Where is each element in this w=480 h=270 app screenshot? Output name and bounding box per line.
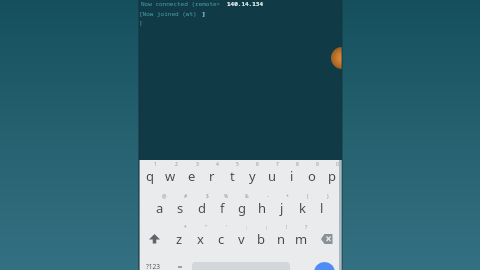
button[interactable]: r [202,160,222,192]
staticText: m [295,230,308,248]
staticText: [Now joined (wt) [139,10,197,18]
staticText: f [220,199,225,217]
staticText: ? [305,224,308,231]
staticText: 1 [154,161,157,168]
button[interactable]: u [262,160,282,192]
button[interactable]: l [312,192,332,224]
staticText: q [146,167,154,185]
staticText: 7 [276,161,279,168]
staticText: $ [206,193,209,200]
staticText: ( [307,193,309,200]
button[interactable]: d [191,192,212,224]
staticText: y [249,167,256,185]
staticText: i [290,167,294,185]
staticText: 5 [236,161,239,168]
staticText: ' [226,224,228,231]
button[interactable]: h [252,192,272,224]
staticText: d [198,199,206,217]
staticText: h [258,199,267,217]
staticText: 2 [175,161,178,168]
staticText: 6 [256,161,259,168]
button[interactable]: c [211,223,231,255]
button[interactable]: g [232,192,252,224]
staticText: Now connected (remote> [141,0,221,8]
button[interactable] [312,223,342,255]
staticText: l [320,199,324,217]
staticText: : [246,224,248,231]
staticText: 4 [216,161,219,168]
button[interactable]: e [181,160,202,192]
button[interactable]: t [222,160,242,192]
staticText: o [308,167,316,185]
staticText: 0 [336,161,339,168]
staticText: 3 [196,161,199,168]
staticText: " [205,224,208,231]
button[interactable] [314,262,335,270]
staticText: g [238,199,246,217]
button[interactable]: y [242,160,262,192]
staticText: r [209,167,215,185]
staticText: n [277,230,286,248]
button[interactable]: b [251,223,271,255]
staticText: k [299,199,306,217]
staticText: u [268,167,277,185]
staticText: 9 [316,161,319,168]
staticText: ] [139,19,143,27]
staticText: s [177,199,184,217]
button[interactable]: a [149,192,170,224]
staticText: + [286,193,289,200]
staticText: p [328,167,336,185]
button[interactable] [331,47,342,69]
button[interactable]: i [282,160,302,192]
button[interactable]: s [170,192,191,224]
staticText: ; [266,224,268,231]
staticText: 140.14.134 [227,0,264,8]
button[interactable]: v [231,223,251,255]
button[interactable]: o [302,160,322,192]
staticText: ) [327,193,329,200]
staticText: ! [286,224,288,231]
button[interactable]: k [292,192,312,224]
button[interactable]: q [139,160,160,192]
button[interactable]: x [190,223,211,255]
staticText: z [176,230,183,248]
button[interactable]: w [160,160,181,192]
staticText: j [280,199,284,217]
button[interactable]: f [212,192,232,224]
staticText: & [245,193,249,200]
staticText: x [197,230,204,248]
staticText: 8 [296,161,299,168]
staticText: t [230,167,235,185]
staticText: v [238,230,245,248]
staticText: w [165,167,176,185]
button[interactable]: n [271,223,291,255]
button[interactable]: Now connected (remote> [139,0,342,160]
staticText: a [156,199,164,217]
staticText: ] [202,10,206,18]
staticText: c [218,230,225,248]
button[interactable] [139,223,169,255]
staticText: * [184,224,187,231]
staticText: # [184,193,188,200]
staticText: b [257,230,265,248]
staticText: @ [162,193,167,200]
button[interactable]: ?123 [146,262,160,270]
button[interactable]: j [272,192,292,224]
staticText: e [188,167,196,185]
button[interactable]: m [291,223,311,255]
staticText: - [267,193,269,200]
button[interactable]: z [169,223,190,255]
button[interactable]: p [322,160,342,192]
staticText: % [224,193,229,200]
